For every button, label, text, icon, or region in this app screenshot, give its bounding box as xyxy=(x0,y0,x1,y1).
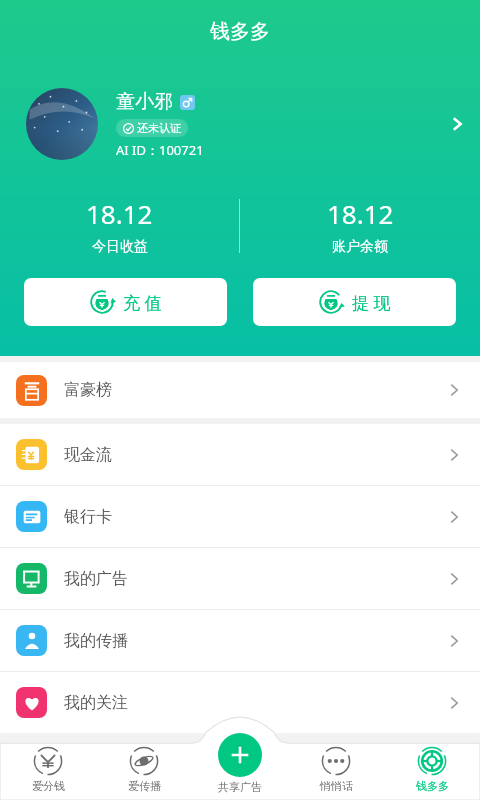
staticText: 富豪榜 xyxy=(64,380,112,400)
button[interactable]: 银行卡 xyxy=(0,486,480,547)
staticText: 爱传播 xyxy=(128,779,161,793)
staticText: 钱多多 xyxy=(210,19,270,44)
button[interactable]: 童小邪 xyxy=(0,86,480,162)
button[interactable]: 我的关注 xyxy=(0,672,480,733)
staticText: 账户余额 xyxy=(332,238,388,256)
staticText: 银行卡 xyxy=(64,507,112,527)
button[interactable]: 钱多多 xyxy=(384,733,480,800)
staticText: 18.12 xyxy=(327,196,394,231)
button[interactable]: 爱传播 xyxy=(96,733,192,800)
button[interactable]: 爱分钱 xyxy=(0,733,96,800)
button[interactable]: 富豪榜 xyxy=(0,362,480,418)
staticText: 今日收益 xyxy=(92,238,148,256)
button[interactable]: 悄悄话 xyxy=(288,733,384,800)
other: 共享广告 xyxy=(218,733,262,777)
staticText: 我的传播 xyxy=(64,631,128,651)
button[interactable]: 现金流 xyxy=(0,424,480,485)
staticText: 钱多多 xyxy=(416,779,449,793)
staticText: 充 值 xyxy=(123,291,162,314)
staticText: 提 现 xyxy=(352,291,391,314)
staticText: 共享广告 xyxy=(218,780,262,794)
staticText: AI ID：100721 xyxy=(116,141,204,159)
staticText: 现金流 xyxy=(64,445,112,465)
staticText: 18.12 xyxy=(86,196,153,231)
button[interactable]: 充 值 xyxy=(24,278,227,326)
button[interactable]: 提 现 xyxy=(253,278,456,326)
button[interactable]: 共享广告 xyxy=(192,733,288,800)
staticText: 我的关注 xyxy=(64,693,128,713)
staticText: 童小邪 xyxy=(116,90,173,114)
staticText: 还未认证 xyxy=(137,121,181,135)
button[interactable]: 我的广告 xyxy=(0,548,480,609)
staticText: 爱分钱 xyxy=(32,779,65,793)
button[interactable]: Profile details xyxy=(434,86,480,162)
staticText: 悄悄话 xyxy=(320,779,353,793)
button[interactable]: 我的传播 xyxy=(0,610,480,671)
staticText: 我的广告 xyxy=(64,569,128,589)
